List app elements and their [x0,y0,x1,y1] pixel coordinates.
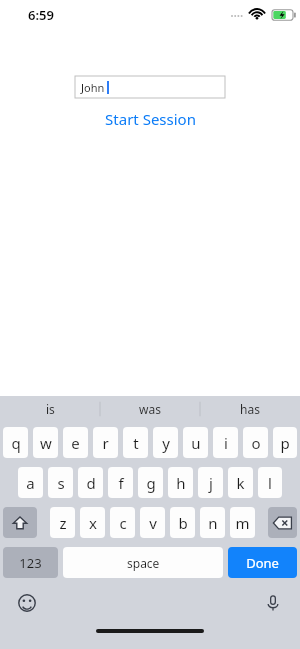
staticText: b [178,513,188,533]
staticText: Start Session [105,109,196,129]
button[interactable]: l [258,467,282,498]
staticText: d [86,473,96,493]
button[interactable]: s [48,467,73,498]
staticText: i [224,433,228,453]
button[interactable]: t [123,427,148,458]
button[interactable]: d [78,467,103,498]
staticText: t [133,433,139,453]
button[interactable]: x [80,507,105,538]
button[interactable]: n [200,507,225,538]
button[interactable]: has [200,396,300,422]
button[interactable]: p [273,427,297,458]
button[interactable]: y [153,427,178,458]
button[interactable]: Done [228,547,297,578]
button[interactable]: v [140,507,165,538]
button[interactable]: Shift [3,507,37,538]
button[interactable]: c [110,507,135,538]
button[interactable]: w [33,427,58,458]
button[interactable]: h [168,467,193,498]
staticText: s [57,473,65,493]
button[interactable]: John [75,76,225,98]
staticText: n [208,513,218,533]
staticText: 6:59 [28,6,54,24]
button[interactable]: was [100,396,200,422]
staticText: g [146,473,156,493]
button[interactable]: is [0,396,100,422]
staticText: y [162,433,170,453]
button[interactable]: f [108,467,133,498]
staticText: m [235,513,250,533]
staticText: is [46,401,55,417]
button[interactable]: u [183,427,208,458]
button[interactable]: Emoji [14,590,40,616]
staticText: w [40,433,52,453]
staticText: q [11,433,21,453]
staticText: l [268,473,272,493]
staticText: o [251,433,261,453]
staticText: e [71,433,80,453]
staticText: space [127,555,160,571]
button[interactable]: 123 [3,547,58,578]
button[interactable]: Backspace [268,507,297,538]
button[interactable]: o [243,427,268,458]
button[interactable]: j [198,467,223,498]
button[interactable]: Dictation [260,590,286,616]
staticText: c [119,513,127,533]
button[interactable]: Start Session [0,108,300,130]
staticText: p [280,433,290,453]
button[interactable]: r [93,427,118,458]
staticText: z [59,513,67,533]
staticText: Done [246,554,279,572]
button[interactable]: m [230,507,255,538]
button[interactable]: g [138,467,163,498]
staticText: x [89,513,97,533]
staticText: a [26,473,35,493]
button[interactable]: k [228,467,253,498]
staticText: has [240,401,260,417]
staticText: h [176,473,186,493]
button[interactable]: space [63,547,223,578]
staticText: u [191,433,201,453]
staticText: v [149,513,157,533]
button[interactable]: b [170,507,195,538]
staticText: was [139,401,161,417]
staticText: r [102,433,109,453]
button[interactable]: i [213,427,238,458]
button[interactable]: a [18,467,43,498]
button[interactable]: e [63,427,88,458]
staticText: k [236,473,245,493]
button[interactable]: q [3,427,28,458]
staticText: f [118,473,124,493]
staticText: John [81,80,105,95]
staticText: j [209,473,213,493]
button[interactable]: z [50,507,75,538]
staticText: 123 [19,554,42,572]
